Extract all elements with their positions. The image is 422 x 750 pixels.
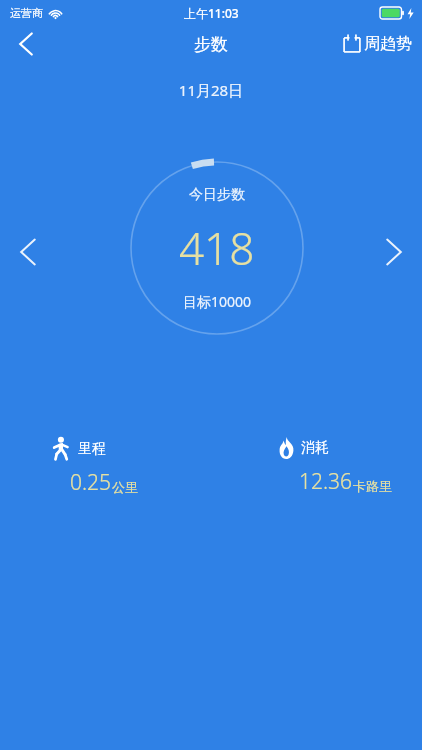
staticText: 目标10000	[183, 292, 252, 311]
button[interactable]: Next day	[374, 230, 414, 274]
staticText: 卡路里	[353, 478, 392, 494]
staticText: 消耗	[301, 439, 329, 457]
staticText: 周趋势	[364, 34, 412, 54]
staticText: 418	[179, 218, 255, 278]
staticText: 上午11:03	[184, 5, 239, 21]
button[interactable]: 里程	[0, 437, 211, 497]
staticText: 运营商	[10, 6, 43, 20]
staticText: 今日步数	[189, 186, 245, 204]
button[interactable]: 消耗	[211, 437, 422, 496]
staticText: 步数	[194, 34, 228, 55]
staticText: 11月28日	[0, 80, 422, 100]
button[interactable]: Back	[0, 26, 52, 62]
button[interactable]: 周趋势	[343, 34, 412, 54]
staticText: 0.25	[70, 468, 112, 497]
staticText: 里程	[78, 440, 106, 458]
staticText: 12.36	[299, 467, 353, 496]
staticText: 公里	[112, 479, 138, 495]
button[interactable]: Previous day	[8, 230, 48, 274]
